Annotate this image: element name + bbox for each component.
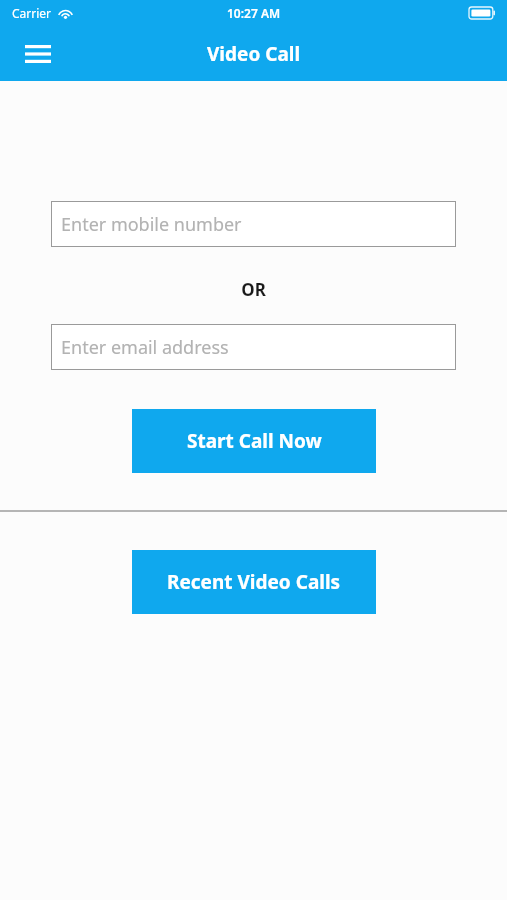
staticText: Enter email address (61, 335, 229, 360)
staticText: Enter mobile number (61, 212, 242, 237)
button[interactable]: Enter mobile number (51, 201, 456, 247)
staticText: OR (0, 278, 507, 301)
staticText: Start Call Now (187, 428, 322, 454)
button[interactable]: Enter email address (51, 324, 456, 370)
staticText: 10:27 AM (227, 5, 281, 21)
staticText: Video Call (207, 41, 301, 67)
button[interactable]: Start Call Now (132, 409, 376, 473)
staticText: Carrier (12, 5, 52, 21)
button[interactable]: Recent Video Calls (132, 550, 376, 614)
staticText: Recent Video Calls (167, 569, 341, 595)
button[interactable]: Open navigation menu (16, 32, 60, 76)
